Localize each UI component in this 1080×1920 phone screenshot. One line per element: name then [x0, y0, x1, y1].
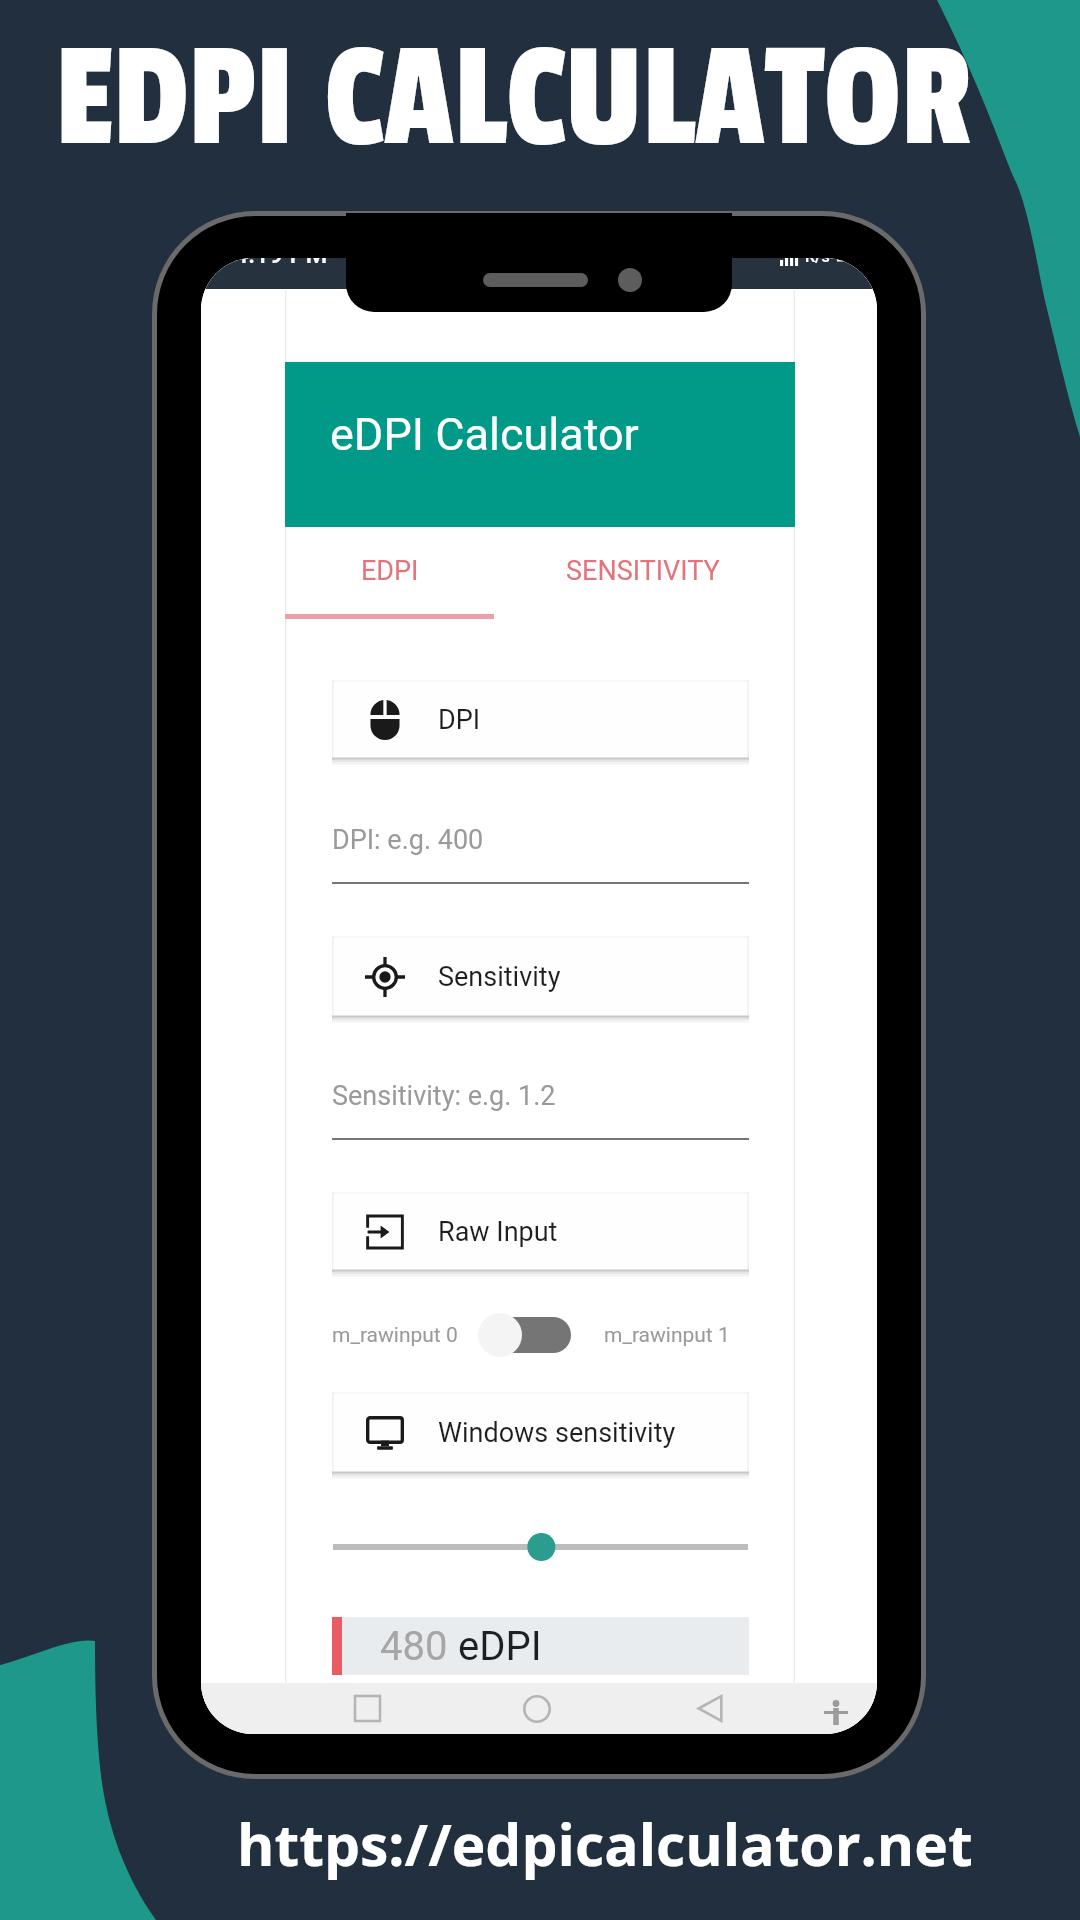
staticText: eDPI [458, 1623, 542, 1670]
staticText: EDPI [361, 555, 419, 587]
button[interactable]: Raw Input [332, 1192, 749, 1272]
staticText: DPI: e.g. 400 [332, 824, 484, 856]
staticText: Raw Input [438, 1216, 558, 1248]
staticText: eDPI Calculator [330, 408, 639, 461]
staticText: 480 [380, 1623, 458, 1670]
button[interactable]: Accessibility [816, 1683, 856, 1734]
staticText: EDPI CALCULATOR [55, 15, 972, 183]
button[interactable]: Back [690, 1683, 730, 1734]
staticText: SENSITIVITY [566, 555, 720, 587]
button[interactable]: DPI [332, 680, 749, 760]
staticText: DPI [438, 704, 481, 736]
button[interactable]: SENSITIVITY [494, 527, 792, 614]
staticText: m_rawinput 0 [332, 1323, 458, 1348]
button[interactable] [478, 1312, 571, 1358]
staticText: Sensitivity [438, 961, 561, 993]
staticText: Windows sensitivity [438, 1417, 676, 1449]
button[interactable]: Recents [347, 1683, 387, 1734]
staticText: m_rawinput 1 [604, 1323, 730, 1348]
button[interactable]: Windows sensitivity [332, 1392, 749, 1474]
button[interactable]: Sensitivity [332, 936, 749, 1018]
button[interactable]: EDPI [285, 527, 494, 614]
staticText: https://edpicalculator.net [237, 1805, 973, 1883]
staticText: 4:19 PM [234, 258, 328, 269]
button[interactable]: Home [517, 1683, 557, 1734]
staticText: K/s [805, 258, 830, 266]
staticText: Sensitivity: e.g. 1.2 [332, 1080, 556, 1112]
